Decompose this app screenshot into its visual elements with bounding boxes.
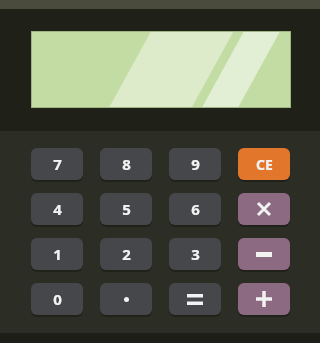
staticText: 7 <box>53 154 62 174</box>
staticText: 9 <box>191 154 200 174</box>
staticText: 3 <box>191 244 200 264</box>
button[interactable]: 2 <box>100 238 152 270</box>
staticText: 2 <box>122 244 131 264</box>
button[interactable]: 0 <box>31 283 83 315</box>
staticText: 8 <box>122 154 131 174</box>
button[interactable]: 5 <box>100 193 152 225</box>
button[interactable]: Decimal point <box>100 283 152 315</box>
button[interactable]: 6 <box>169 193 221 225</box>
button[interactable]: 8 <box>100 148 152 180</box>
button[interactable]: 4 <box>31 193 83 225</box>
button[interactable]: Add <box>238 283 290 315</box>
button[interactable]: Multiply <box>238 193 290 225</box>
staticText: 0 <box>53 289 62 309</box>
button[interactable]: 9 <box>169 148 221 180</box>
button[interactable]: 3 <box>169 238 221 270</box>
staticText: 6 <box>191 199 200 219</box>
button[interactable]: 1 <box>31 238 83 270</box>
staticText: 5 <box>122 199 131 219</box>
button[interactable]: Equals <box>169 283 221 315</box>
button[interactable]: 7 <box>31 148 83 180</box>
staticText: 4 <box>53 199 62 219</box>
button[interactable]: Subtract <box>238 238 290 270</box>
staticText: 1 <box>53 244 62 264</box>
staticText: CE <box>256 155 273 174</box>
button[interactable]: CE <box>238 148 290 180</box>
